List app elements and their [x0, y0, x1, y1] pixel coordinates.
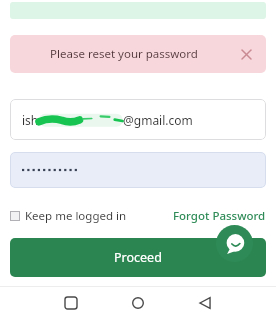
- button[interactable]: Keep me logged in: [10, 208, 131, 224]
- button[interactable]: ish: [10, 99, 266, 140]
- button[interactable]: Proceed: [10, 238, 266, 277]
- staticText: Forgot Password: [173, 208, 266, 224]
- staticText: ish: [22, 112, 39, 128]
- staticText: @gmail.com: [123, 112, 193, 128]
- button[interactable]: Dismiss: [235, 43, 257, 65]
- button[interactable]: Back: [190, 288, 220, 318]
- staticText: Proceed: [114, 249, 162, 266]
- button[interactable]: Forgot Password: [173, 208, 266, 224]
- staticText: Please reset your password: [50, 46, 198, 62]
- button[interactable]: Home: [123, 288, 153, 318]
- button[interactable]: [10, 152, 266, 188]
- button[interactable]: Please reset your password: [10, 35, 266, 73]
- staticText: Keep me logged in: [25, 208, 127, 224]
- button[interactable]: Chat support: [216, 225, 253, 262]
- button[interactable]: Recent apps: [56, 288, 86, 318]
